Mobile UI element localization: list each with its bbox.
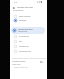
button[interactable]: MIDI bbox=[10, 39, 47, 44]
staticText: Ajustes de USB bbox=[17, 6, 33, 9]
staticText: Transferencia de datos bbox=[18, 29, 33, 31]
staticText: USB controlado por bbox=[13, 10, 24, 11]
staticText: Transferir archivos bbox=[18, 31, 28, 32]
button[interactable]: Transferir fotos bbox=[10, 44, 47, 49]
staticText: 9:41 bbox=[14, 1, 18, 3]
button[interactable]: Anclaje red USB bbox=[10, 34, 47, 39]
staticText: MIDI bbox=[19, 41, 23, 43]
staticText: Más información sobre el USB bbox=[14, 67, 28, 68]
staticText: Transferir fotos bbox=[19, 46, 29, 48]
button[interactable]: Sin transferir datos bbox=[10, 49, 47, 54]
staticText: Equipo conectado bbox=[19, 16, 31, 18]
staticText: Sin transferir datos bbox=[19, 51, 32, 53]
staticText: Anclaje red USB bbox=[19, 36, 29, 38]
button[interactable] bbox=[10, 59, 47, 66]
button[interactable] bbox=[11, 27, 45, 34]
button[interactable]: Equipo conectado bbox=[10, 14, 47, 19]
button[interactable]: Este equipo bbox=[10, 18, 47, 23]
staticText: Este equipo bbox=[19, 20, 27, 22]
staticText: Transferir archivos bbox=[12, 60, 26, 62]
staticText: Permitir acceso bbox=[12, 64, 21, 66]
button[interactable]: Atrás bbox=[11, 5, 16, 10]
